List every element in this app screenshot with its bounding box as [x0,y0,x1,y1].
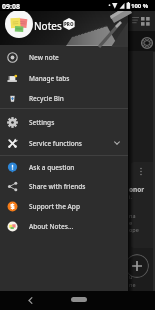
button[interactable]: New note [0,47,128,67]
other: Grid view [141,17,150,26]
button[interactable]: Home [71,297,87,302]
staticText: PRO [64,21,74,27]
button[interactable]: Manage tabs [0,68,128,88]
button[interactable]: Add note [125,254,149,278]
staticText: Support the App [29,202,80,211]
staticText: New note [29,53,59,62]
staticText: Settings [29,118,55,127]
button[interactable]: Pro version [63,18,75,30]
button[interactable]: About Notes... [0,216,128,236]
staticText: Ask a question [29,163,75,172]
button[interactable]: Support the App [0,196,128,216]
staticText: Recycle Bin [29,94,64,103]
staticText: Service functions [29,139,82,148]
staticText: About Notes... [29,222,74,231]
button[interactable]: Notes logo [5,10,33,38]
staticText: u [129,273,133,280]
staticText: na [129,212,136,219]
button[interactable]: Recycle Bin [0,88,128,108]
staticText: Notes [34,19,62,33]
staticText: i. [129,193,132,200]
button[interactable]: Service functions [0,133,128,153]
staticText: 09:08 [2,2,20,12]
staticText: Share with friends [29,182,86,191]
staticText: e [129,219,133,226]
staticText: onor [129,185,145,194]
staticText: ne [129,281,136,288]
button[interactable]: Ask a question [0,157,128,177]
button[interactable]: Settings [0,112,128,132]
staticText: 100 % [131,2,149,10]
button[interactable]: Share with friends [0,176,128,196]
button[interactable]: Back [24,294,37,307]
staticText: ope [129,226,139,233]
staticText: Manage tabs [29,74,70,83]
